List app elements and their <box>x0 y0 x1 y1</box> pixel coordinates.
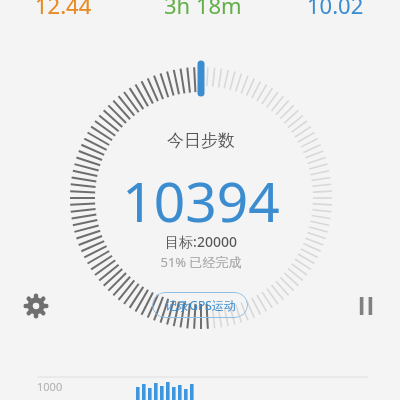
button[interactable]: 12.44 <box>28 0 98 14</box>
staticText: 记录GPS运动 <box>165 297 236 313</box>
staticText: 今日步数 <box>167 130 235 151</box>
staticText: 51% 已经完成 <box>160 253 242 271</box>
button[interactable]: 记录GPS运动 <box>152 292 248 318</box>
staticText: 1000 <box>37 379 63 393</box>
button[interactable]: 10.02 <box>295 0 375 14</box>
button[interactable]: 3h 18m <box>155 0 250 14</box>
button[interactable]: Settings <box>18 288 54 324</box>
staticText: 目标:20000 <box>165 232 237 250</box>
staticText: 10394 <box>122 163 280 223</box>
staticText: 3h 18m <box>164 0 242 14</box>
staticText: 10.02 <box>307 0 364 14</box>
staticText: 12.44 <box>35 0 92 14</box>
button[interactable]: Pause <box>348 288 384 324</box>
